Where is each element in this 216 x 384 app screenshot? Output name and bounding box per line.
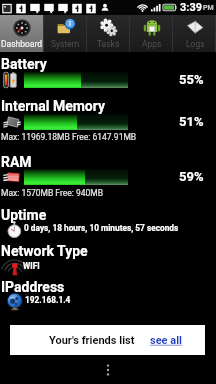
staticText: Internal Memory bbox=[1, 98, 106, 114]
button[interactable]: Apps bbox=[130, 15, 173, 52]
button[interactable]: Your's friends list bbox=[10, 325, 205, 355]
staticText: IPaddress bbox=[1, 279, 65, 295]
staticText: 3:39 bbox=[180, 1, 203, 14]
staticText: RAM bbox=[1, 154, 32, 170]
staticText: Uptime bbox=[1, 207, 47, 223]
staticText: Tasks bbox=[97, 39, 120, 49]
button[interactable]: System bbox=[44, 15, 87, 52]
staticText: Logs bbox=[186, 39, 205, 49]
staticText: 59% bbox=[179, 169, 204, 184]
staticText: 192.168.1.4 bbox=[25, 295, 71, 305]
staticText: 51% bbox=[179, 114, 204, 129]
staticText: WIFI bbox=[23, 261, 40, 271]
staticText: Battery bbox=[1, 56, 47, 72]
button[interactable]: Logs bbox=[173, 15, 216, 52]
staticText: Network Type bbox=[1, 243, 88, 259]
staticText: PM bbox=[203, 4, 214, 12]
staticText: 0 days, 18 hours, 10 minutes, 57 seconds bbox=[24, 223, 179, 233]
staticText: Dashboard bbox=[1, 39, 43, 49]
staticText: System bbox=[51, 39, 80, 49]
staticText: Max: 1570MB Free: 940MB bbox=[1, 188, 103, 198]
button[interactable]: Dashboard bbox=[0, 15, 44, 52]
staticText: Max: 11969.18MB Free: 6147.91MB bbox=[1, 132, 137, 142]
staticText: 55% bbox=[179, 72, 204, 87]
button[interactable]: Tasks bbox=[87, 15, 130, 52]
button[interactable]: More options bbox=[96, 358, 120, 382]
staticText: Your's friends list bbox=[49, 334, 135, 347]
staticText: see all bbox=[150, 334, 183, 347]
staticText: Apps bbox=[142, 39, 162, 49]
